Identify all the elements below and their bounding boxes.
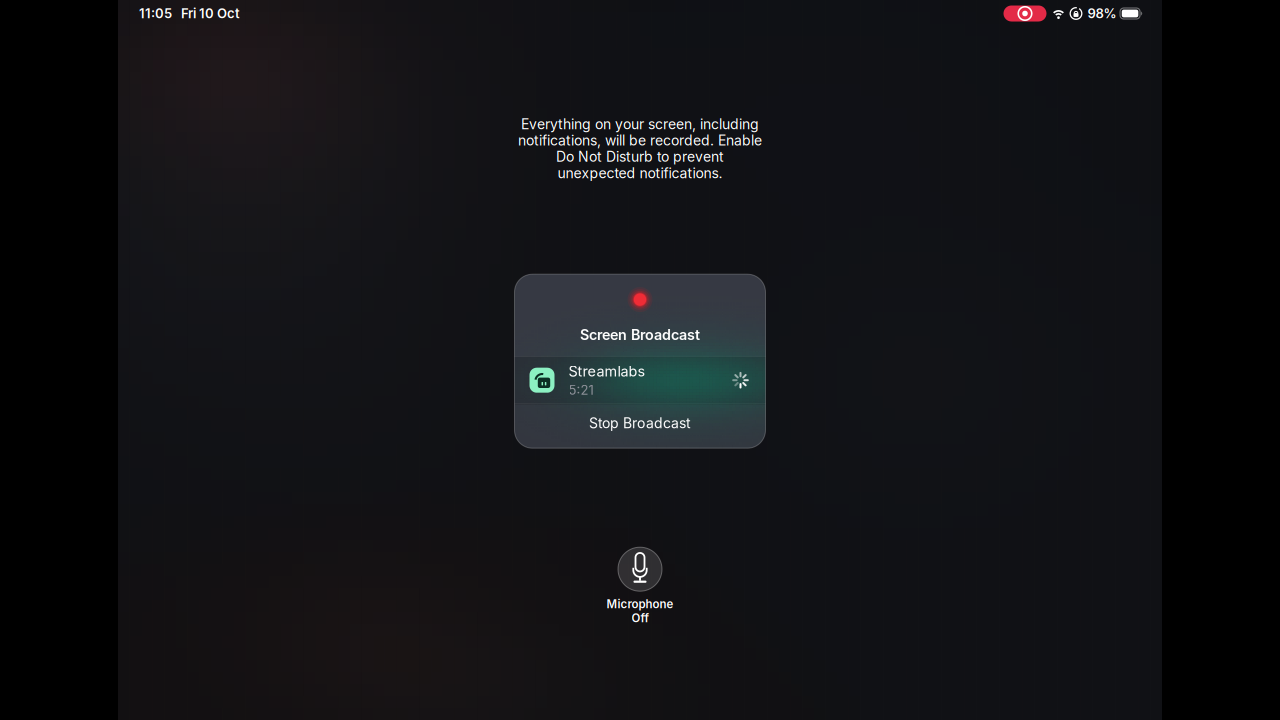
staticText: Everything on your screen, including [521,116,759,133]
staticText: Screen Broadcast [580,326,700,343]
button[interactable]: Streamlabs [514,357,765,403]
staticText: Microphone [606,597,673,611]
staticText: unexpected notifications. [557,165,722,181]
staticText: Do Not Disturb to prevent [556,148,724,165]
staticText: notifications, will be recorded. Enable [518,132,762,149]
button[interactable]: Stop Broadcast [514,404,765,448]
staticText: 11:05 [139,6,172,21]
staticText: Off [631,611,648,625]
staticText: Streamlabs [568,363,645,380]
button[interactable]: Microphone Off [575,547,705,625]
staticText: 98% [1087,6,1116,21]
staticText: 5:21 [568,382,593,398]
staticText: Fri 10 Oct [181,6,240,21]
staticText: Stop Broadcast [589,415,691,432]
